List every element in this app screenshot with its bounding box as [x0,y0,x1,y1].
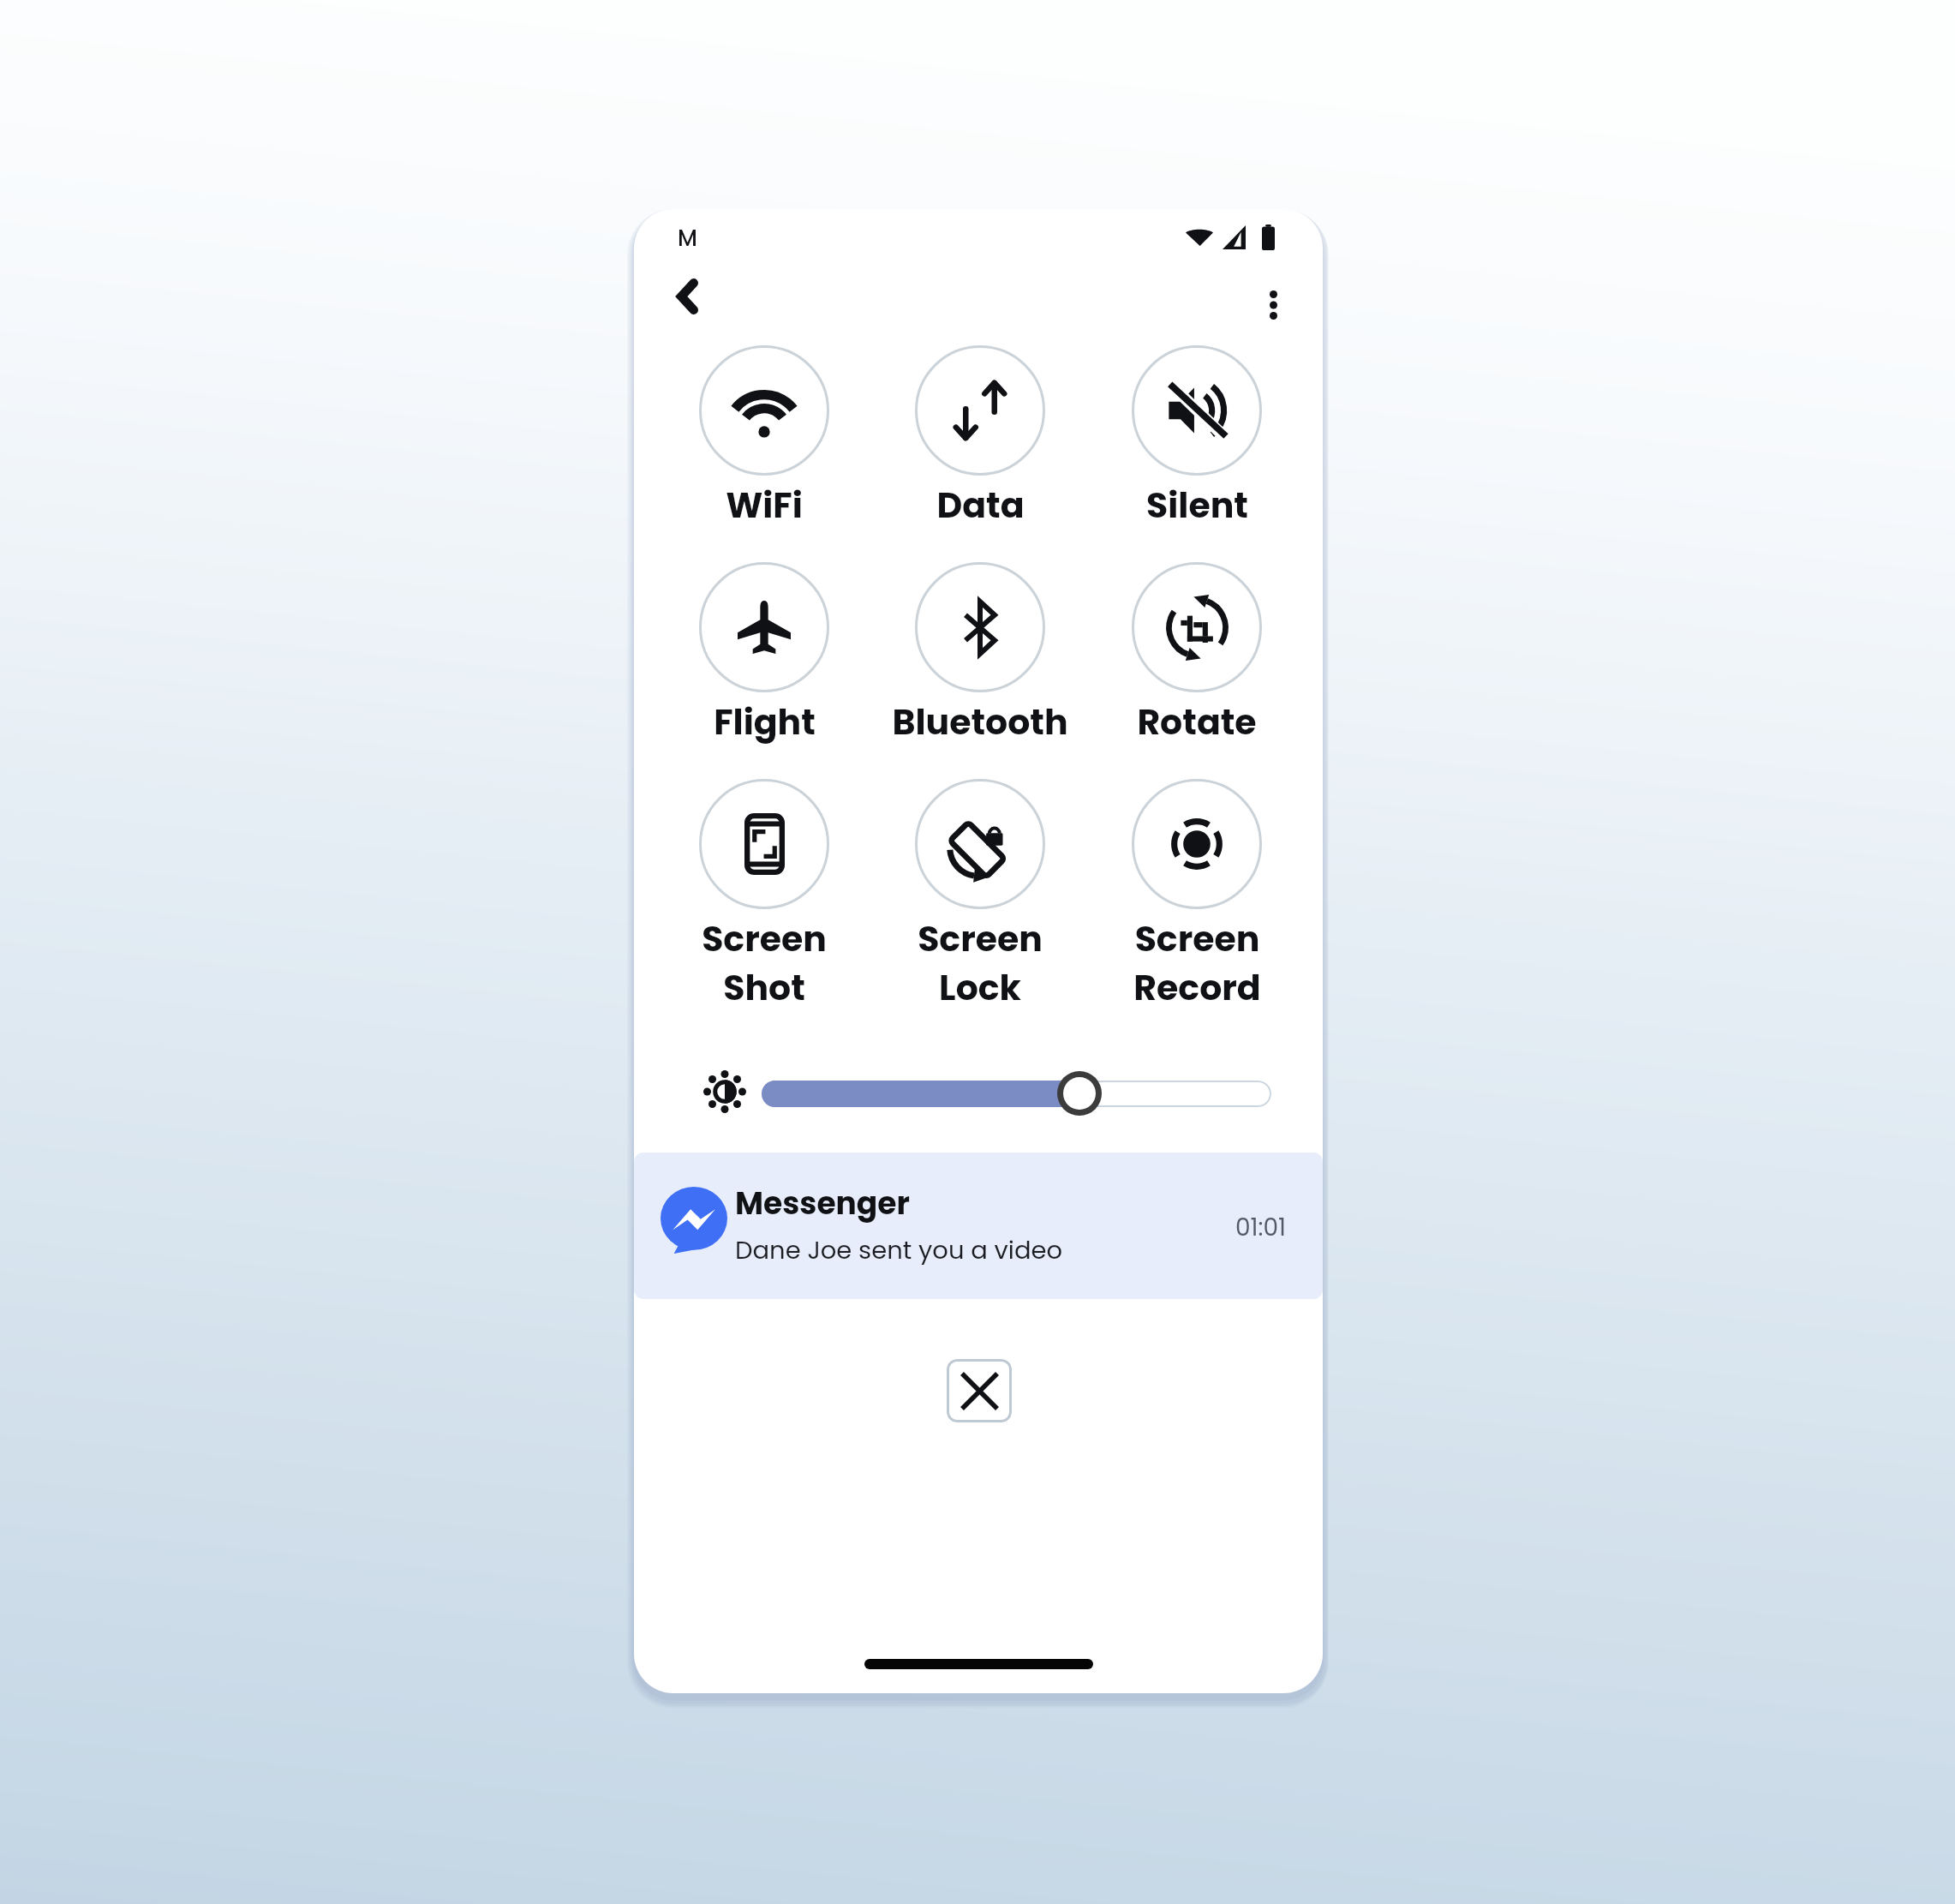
staticText: M [678,223,697,254]
staticText: WiFi [726,481,803,530]
button[interactable]: Screen Lock [877,779,1083,1012]
button[interactable]: More options [1230,262,1316,348]
staticText: 01:01 [1235,1211,1287,1244]
button[interactable]: Back [644,254,730,339]
staticText: Screen Record [1133,914,1261,1012]
staticText: Flight [714,698,816,746]
staticText: Data [936,481,1025,530]
staticText: Screen Shot [702,914,827,1012]
staticText: Silent [1146,481,1248,530]
button[interactable]: Messenger [634,1153,1323,1299]
button[interactable]: Close [947,1359,1012,1422]
staticText: Rotate [1137,698,1257,746]
staticText: Messenger [735,1182,910,1224]
button[interactable]: Silent [1094,345,1300,530]
button[interactable]: Screen Record [1094,779,1300,1012]
button[interactable]: Screen Shot [661,779,867,1012]
button[interactable]: Brightness slider [762,1081,1271,1107]
staticText: Screen Lock [918,914,1043,1012]
button[interactable]: Data [877,345,1083,530]
button[interactable]: Rotate [1094,562,1300,746]
button[interactable]: Brightness [697,1063,753,1120]
button[interactable]: Flight [661,562,867,746]
button[interactable]: Bluetooth [877,562,1083,746]
button[interactable]: WiFi [661,345,867,530]
staticText: Dane Joe sent you a video [735,1233,1063,1268]
staticText: Bluetooth [892,698,1068,746]
